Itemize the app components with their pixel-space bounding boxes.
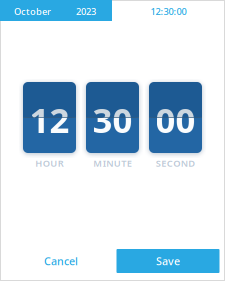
staticText: 00 xyxy=(155,96,195,142)
staticText: 12:30:00 xyxy=(150,5,186,18)
staticText: SECOND xyxy=(156,157,195,169)
button[interactable]: Save xyxy=(116,249,219,273)
staticText: 30 xyxy=(92,96,132,142)
staticText: 12 xyxy=(29,96,69,142)
staticText: October xyxy=(14,5,51,18)
button[interactable]: Cancel xyxy=(5,249,108,273)
staticText: HOUR xyxy=(35,157,64,169)
staticText: 00 xyxy=(155,96,195,142)
staticText: 12 xyxy=(29,96,69,142)
staticText: Save xyxy=(156,254,180,268)
staticText: 30 xyxy=(92,96,132,142)
staticText: 2023 xyxy=(76,5,96,18)
staticText: MINUTE xyxy=(93,157,132,169)
staticText: Cancel xyxy=(44,254,78,268)
